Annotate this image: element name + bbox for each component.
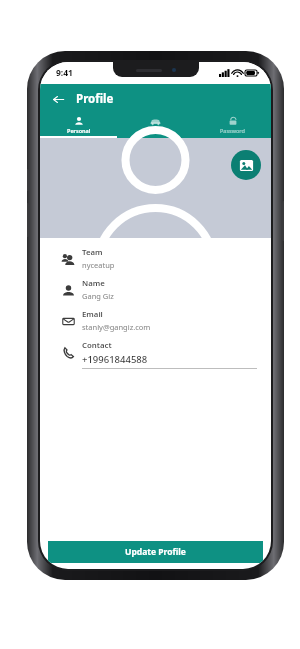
button[interactable]: Password bbox=[194, 114, 271, 138]
button[interactable]: Change photo bbox=[231, 150, 261, 180]
staticText: Vehicle bbox=[146, 128, 165, 135]
staticText: Email bbox=[82, 309, 103, 320]
staticText: +19961844588 bbox=[82, 353, 148, 366]
staticText: 9:41 bbox=[56, 67, 73, 79]
button[interactable]: Personal bbox=[40, 114, 117, 138]
staticText: Update Profile bbox=[125, 546, 186, 558]
staticText: stanly@gangiz.com bbox=[82, 322, 151, 332]
staticText: nyceatup bbox=[82, 260, 115, 270]
button[interactable]: Team bbox=[54, 247, 257, 271]
staticText: Personal bbox=[67, 127, 91, 134]
staticText: Name bbox=[82, 278, 105, 289]
button[interactable]: Name bbox=[54, 278, 257, 302]
staticText: Password bbox=[220, 127, 245, 134]
button[interactable]: Contact bbox=[54, 340, 257, 369]
button[interactable]: Update Profile bbox=[48, 541, 263, 563]
staticText: Team bbox=[82, 247, 103, 258]
button[interactable]: Email bbox=[54, 309, 257, 333]
staticText: Profile bbox=[76, 91, 114, 107]
button[interactable]: Back bbox=[46, 87, 70, 111]
button[interactable]: Vehicle bbox=[117, 114, 194, 138]
staticText: Contact bbox=[82, 340, 112, 351]
staticText: Gang Giz bbox=[82, 291, 114, 301]
